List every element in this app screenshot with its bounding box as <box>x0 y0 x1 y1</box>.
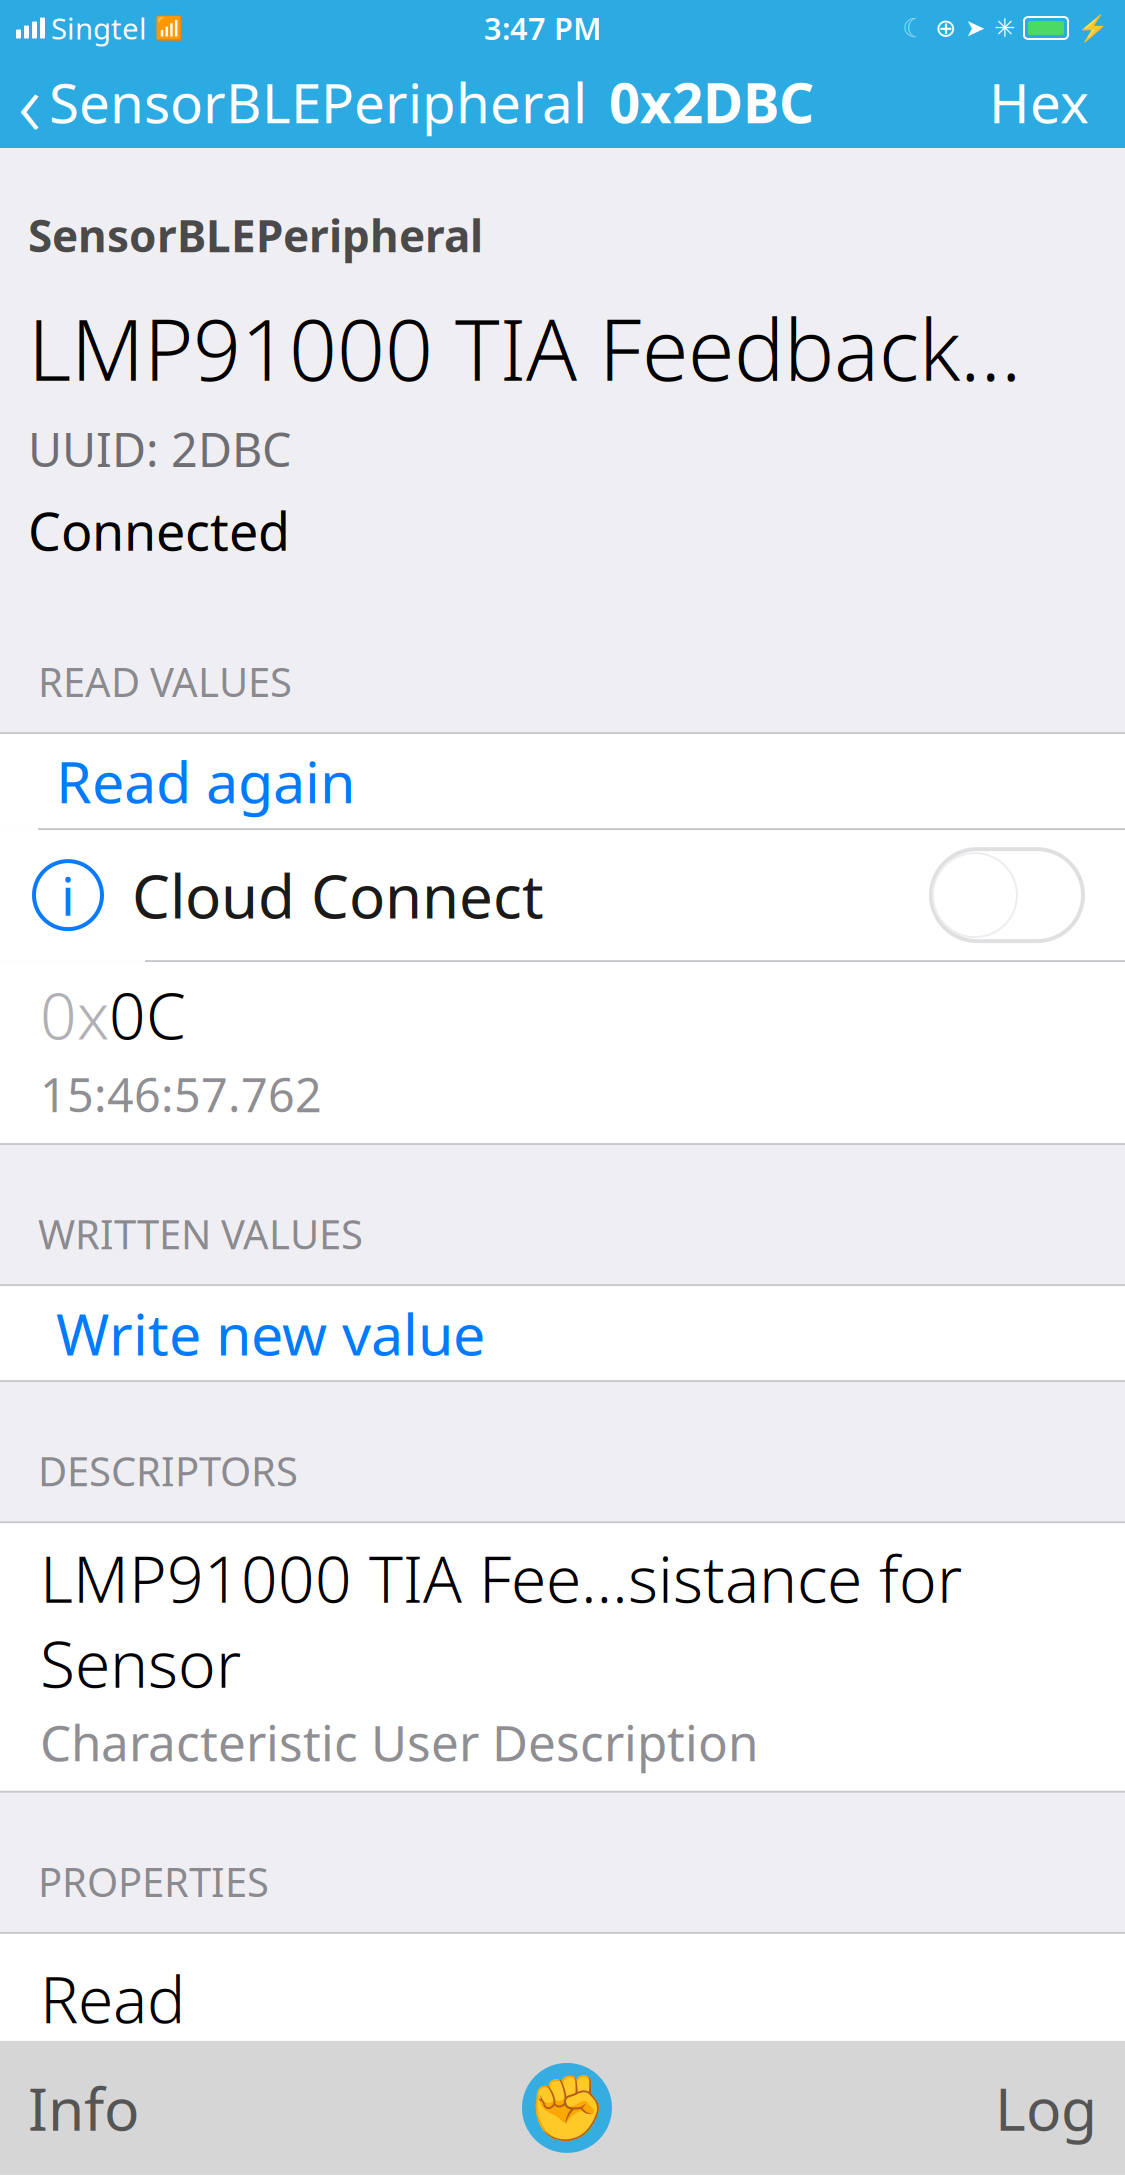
staticText: 0x <box>40 972 109 1057</box>
button[interactable]: Info <box>0 2041 167 2175</box>
button[interactable]: Log <box>967 2041 1125 2175</box>
staticText: 0x2DBC <box>609 66 814 138</box>
staticText: DESCRIPTORS <box>38 1444 298 1497</box>
staticText: Info <box>28 2069 139 2147</box>
staticText: i <box>61 860 75 930</box>
staticText: Singtel <box>51 8 147 47</box>
staticText: Hex <box>989 66 1089 138</box>
staticText: 0C <box>109 972 186 1057</box>
staticText: SensorBLEPeripheral <box>28 206 483 264</box>
staticText: 📶 <box>155 15 183 41</box>
staticText: Read again <box>56 743 355 819</box>
staticText: ✊ <box>527 2071 607 2144</box>
staticText: Write new value <box>56 1295 485 1371</box>
staticText: Log <box>995 2069 1097 2147</box>
button[interactable]: Write new value <box>0 1286 1125 1380</box>
button[interactable]: i <box>0 830 1125 960</box>
button[interactable]: ‹ <box>0 56 593 148</box>
staticText: 3:47 PM <box>484 8 601 48</box>
button[interactable]: Punch <box>512 2041 622 2175</box>
staticText: ☾ <box>902 13 926 43</box>
staticText: Connected <box>28 496 290 565</box>
staticText: 15:46:57.762 <box>40 1063 322 1125</box>
staticText: READ VALUES <box>38 655 292 708</box>
staticText: ➤ <box>965 14 985 42</box>
button[interactable]: LMP91000 TIA Fee…sistance for Sensor <box>0 1523 1125 1791</box>
staticText: UUID: 2DBC <box>28 418 291 480</box>
staticText: ⚡ <box>1077 13 1109 42</box>
staticText: ‹ <box>18 44 41 160</box>
staticText: ⊕ <box>935 14 956 42</box>
staticText: PROPERTIES <box>38 1855 269 1908</box>
button[interactable]: Read again <box>0 734 1125 828</box>
staticText: WRITTEN VALUES <box>38 1207 363 1260</box>
staticText: SensorBLEPeripheral <box>49 66 587 138</box>
staticText: Characteristic User Description <box>40 1709 758 1775</box>
staticText: Read <box>40 1956 185 2041</box>
staticText: LMP91000 TIA Fee…sistance for Sensor <box>40 1535 962 1705</box>
staticText: LMP91000 TIA Feedback… <box>28 292 1021 404</box>
staticText: ✳ <box>994 14 1015 42</box>
staticText: Cloud Connect <box>132 855 544 935</box>
button[interactable]: Hex <box>967 56 1111 148</box>
